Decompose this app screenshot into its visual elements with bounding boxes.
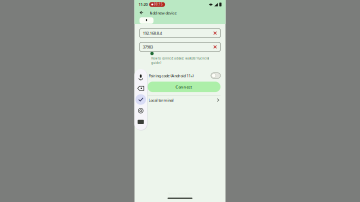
button[interactable]: Pairing code (Android 11+) [134, 72, 225, 79]
staticText: 37983 [143, 44, 153, 49]
staticText: 00:15 [154, 3, 163, 6]
button[interactable]: Backspace [134, 83, 147, 94]
button[interactable]: Microphone [134, 71, 147, 83]
staticText: 11:20 [138, 2, 147, 7]
button[interactable]: Confirm [134, 94, 147, 105]
staticText: Pairing code (Android 11+) [148, 73, 193, 78]
staticText: Connect [175, 84, 192, 89]
staticText: 192.168.8.4 [143, 30, 162, 36]
button[interactable]: Clear text [211, 43, 219, 51]
staticText: Add new device [149, 10, 176, 16]
staticText: guide) [151, 61, 161, 65]
button[interactable]: Local terminal [134, 95, 225, 105]
button[interactable]: Settings [134, 105, 147, 116]
button[interactable]: Connect [134, 82, 225, 92]
staticText: How to connect a device via ADB? (Genera… [151, 57, 209, 60]
button[interactable]: Device tab [139, 17, 153, 24]
button[interactable]: How to connect a device via ADB? (Genera… [146, 57, 214, 65]
button[interactable]: Clear text [211, 29, 219, 37]
button[interactable]: Keyboard [134, 116, 147, 127]
button[interactable]: Back [137, 9, 145, 17]
staticText: Local terminal [148, 97, 173, 103]
